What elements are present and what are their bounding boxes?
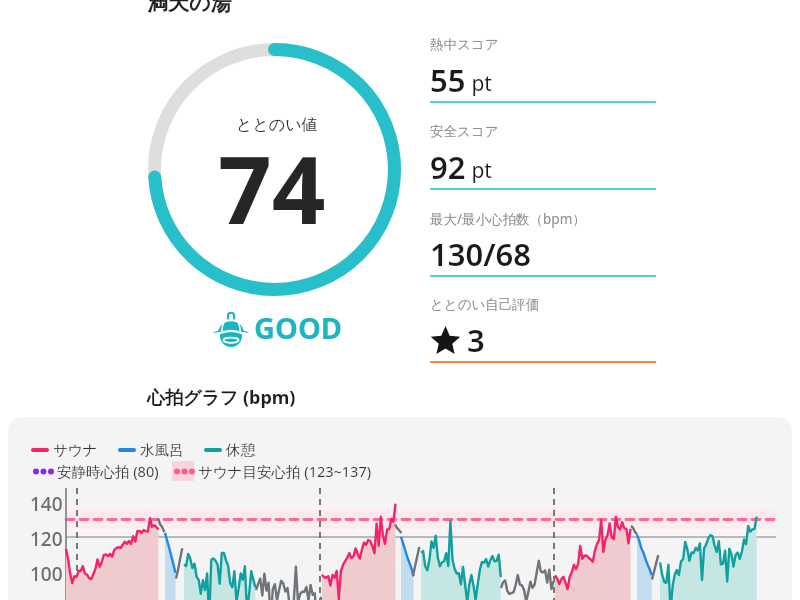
staticText: 心拍グラフ (bpm) bbox=[147, 385, 296, 410]
staticText: 100 bbox=[30, 561, 63, 587]
staticText: 安全スコア bbox=[430, 123, 499, 140]
staticText: 満天の湯 bbox=[147, 0, 232, 16]
button[interactable]: ととのい自己評価 bbox=[430, 296, 656, 367]
staticText: 55 bbox=[430, 59, 466, 101]
staticText: 熱中スコア bbox=[430, 36, 499, 53]
staticText: 140 bbox=[30, 491, 63, 517]
button[interactable]: 安全スコア bbox=[430, 123, 656, 194]
staticText: pt bbox=[466, 156, 492, 185]
staticText: ととのい値 bbox=[236, 115, 318, 135]
staticText: 安静時心拍 (80) bbox=[57, 461, 159, 481]
button[interactable]: サウナ目安心拍 (123~137) bbox=[172, 461, 372, 481]
staticText: 3 bbox=[467, 319, 485, 361]
staticText: 休憩 bbox=[226, 441, 255, 459]
staticText: サウナ bbox=[53, 441, 98, 459]
staticText: 最大/最小心拍数（bpm） bbox=[430, 210, 586, 228]
button[interactable]: サウナ bbox=[31, 441, 98, 459]
staticText: 水風呂 bbox=[140, 441, 184, 459]
button[interactable]: 熱中スコア bbox=[430, 36, 656, 107]
staticText: 120 bbox=[30, 526, 63, 552]
staticText: サウナ目安心拍 (123~137) bbox=[198, 461, 372, 481]
button[interactable]: 最大/最小心拍数（bpm） bbox=[430, 210, 656, 281]
staticText: pt bbox=[466, 69, 492, 98]
other: Condition good bbox=[212, 309, 250, 347]
staticText: 74 bbox=[218, 124, 326, 252]
staticText: GOOD bbox=[254, 308, 343, 347]
staticText: ととのい自己評価 bbox=[430, 296, 540, 313]
button[interactable]: 休憩 bbox=[204, 441, 255, 459]
staticText: 130/68 bbox=[430, 233, 532, 275]
button[interactable]: 水風呂 bbox=[118, 441, 184, 459]
staticText: 92 bbox=[430, 146, 466, 188]
button[interactable]: 安静時心拍 (80) bbox=[31, 461, 159, 481]
button[interactable]: Condition good bbox=[212, 308, 343, 347]
